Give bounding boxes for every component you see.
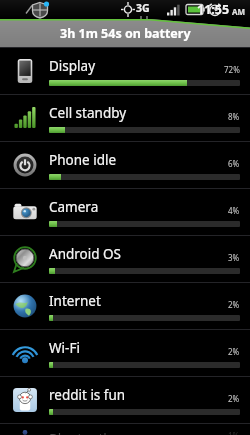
staticText: Camera [49,198,228,216]
staticText: Android OS [49,245,228,263]
staticText: reddit is fun [49,386,228,404]
button[interactable]: Camera [0,188,250,235]
staticText: Phone idle [49,151,228,169]
button[interactable]: Android OS [0,235,250,282]
staticText: 1% [228,430,240,435]
staticText: 3h 1m 54s on battery [60,25,191,42]
staticText: 3G [136,1,150,15]
staticText: 6% [228,158,240,169]
staticText: 2% [228,299,240,310]
staticText: Internet [49,292,228,310]
button[interactable]: Wi-Fi [0,329,250,376]
button[interactable]: reddit is fun [0,376,250,423]
button[interactable]: Phone idle [0,141,250,188]
button[interactable]: Internet [0,282,250,329]
staticText: 2% [228,346,240,357]
staticText: 11:55 [197,1,230,18]
staticText: 3% [228,252,240,263]
staticText: Bluetooth [49,430,228,435]
button[interactable]: Cell standby [0,94,250,141]
staticText: 4% [228,205,240,216]
button[interactable]: Bluetooth [0,423,250,435]
staticText: 72% [224,64,240,75]
staticText: Wi-Fi [49,339,228,357]
staticText: Display [49,57,224,75]
staticText: 2% [228,393,240,404]
staticText: 8% [228,111,240,122]
staticText: AM [232,6,246,17]
staticText: Cell standby [49,104,228,122]
button[interactable]: Display [0,47,250,94]
